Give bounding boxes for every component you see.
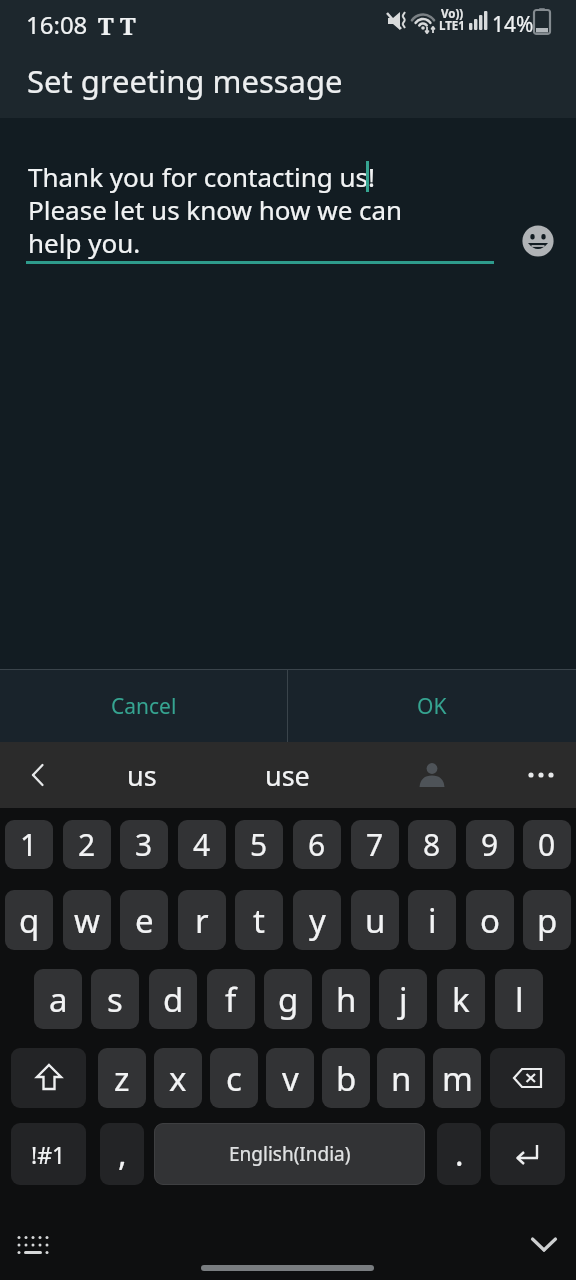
staticText: z [114, 1056, 130, 1101]
button[interactable]: l [495, 969, 543, 1029]
staticText: us [127, 757, 157, 794]
staticText: b [336, 1056, 357, 1101]
button[interactable]: c [210, 1048, 258, 1108]
staticText: 9 [481, 824, 499, 865]
staticText: 0 [538, 824, 556, 865]
staticText: 6 [308, 824, 326, 865]
staticText: T [98, 9, 114, 42]
staticText: u [365, 898, 386, 943]
button[interactable]: n [377, 1048, 425, 1108]
staticText: 14% [492, 10, 534, 39]
button[interactable]: 7 [351, 820, 399, 869]
button[interactable]: 6 [293, 820, 341, 869]
button[interactable]: v [266, 1048, 314, 1108]
staticText: T [120, 9, 136, 42]
staticText: o [480, 898, 500, 943]
staticText: LTE1 [439, 18, 465, 34]
button[interactable] [520, 1224, 568, 1266]
button[interactable]: 9 [466, 820, 514, 869]
staticText: v [282, 1056, 299, 1101]
button[interactable]: Cancel [0, 670, 287, 742]
button[interactable]: 4 [178, 820, 226, 869]
staticText: . [455, 1132, 464, 1176]
button[interactable]: y [293, 890, 341, 950]
button[interactable]: w [63, 890, 111, 950]
button[interactable]: 1 [5, 820, 53, 869]
button[interactable]: . [437, 1123, 481, 1185]
button[interactable] [511, 748, 571, 802]
button[interactable]: o [466, 890, 514, 950]
staticText: s [107, 977, 123, 1022]
button[interactable] [518, 221, 558, 261]
button[interactable]: j [379, 969, 427, 1029]
button[interactable] [405, 748, 459, 802]
staticText: , [118, 1132, 127, 1176]
staticText: use [265, 757, 310, 794]
button[interactable]: f [207, 969, 255, 1029]
button[interactable]: 0 [523, 820, 571, 869]
button[interactable]: d [149, 969, 197, 1029]
button[interactable]: English(India) [154, 1123, 425, 1185]
staticText: English(India) [229, 1141, 351, 1167]
staticText: 4 [193, 824, 211, 865]
staticText: r [195, 898, 209, 943]
staticText: 8 [423, 824, 441, 865]
button[interactable]: z [98, 1048, 146, 1108]
button[interactable]: u [351, 890, 399, 950]
staticText: !#1 [31, 1139, 66, 1170]
button[interactable]: 5 [235, 820, 283, 869]
staticText: 7 [366, 824, 384, 865]
staticText: e [135, 898, 154, 943]
button[interactable]: q [5, 890, 53, 950]
staticText: 5 [250, 824, 268, 865]
staticText: Vo)) [441, 6, 464, 22]
staticText: x [169, 1056, 187, 1101]
staticText: k [452, 977, 470, 1022]
staticText: c [226, 1056, 242, 1101]
staticText: 3 [135, 824, 153, 865]
button[interactable]: g [264, 969, 312, 1029]
button[interactable] [8, 1224, 56, 1266]
staticText: m [442, 1056, 473, 1101]
button[interactable]: t [235, 890, 283, 950]
button[interactable] [11, 1048, 86, 1108]
button[interactable]: use [237, 748, 337, 802]
staticText: p [537, 898, 558, 943]
button[interactable]: a [34, 969, 82, 1029]
button[interactable]: i [408, 890, 456, 950]
staticText: 16:08 [26, 8, 88, 41]
button[interactable]: , [100, 1123, 144, 1185]
button[interactable] [490, 1123, 565, 1185]
button[interactable]: s [91, 969, 139, 1029]
staticText: w [74, 898, 100, 943]
staticText: n [391, 1056, 412, 1101]
button[interactable]: 3 [120, 820, 168, 869]
staticText: l [515, 977, 524, 1022]
button[interactable]: r [178, 890, 226, 950]
staticText: i [428, 898, 437, 943]
button[interactable]: h [322, 969, 370, 1029]
button[interactable]: k [437, 969, 485, 1029]
staticText: t [253, 898, 265, 943]
staticText: Cancel [111, 692, 177, 721]
staticText: a [49, 977, 68, 1022]
button[interactable]: 2 [63, 820, 111, 869]
button[interactable]: !#1 [11, 1123, 86, 1185]
staticText: Set greeting message [27, 60, 343, 102]
staticText: g [278, 977, 299, 1022]
staticText: j [399, 977, 408, 1022]
button[interactable]: 8 [408, 820, 456, 869]
button[interactable]: OK [288, 670, 576, 742]
staticText: h [336, 977, 357, 1022]
button[interactable] [12, 748, 64, 802]
button[interactable]: x [154, 1048, 202, 1108]
staticText: d [163, 977, 184, 1022]
staticText: y [309, 898, 326, 943]
button[interactable] [490, 1048, 565, 1108]
button[interactable]: us [92, 748, 192, 802]
button[interactable]: m [433, 1048, 481, 1108]
button[interactable]: e [120, 890, 168, 950]
staticText: 1 [20, 824, 38, 865]
button[interactable]: b [322, 1048, 370, 1108]
button[interactable]: p [523, 890, 571, 950]
